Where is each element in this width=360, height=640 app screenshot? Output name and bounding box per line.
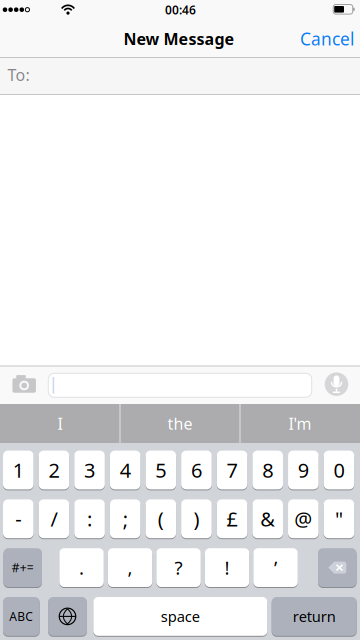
staticText: ’: [274, 555, 277, 580]
staticText: &: [260, 505, 275, 532]
button[interactable]: 7: [217, 450, 247, 490]
staticText: #+=: [12, 560, 34, 575]
staticText: £: [227, 505, 238, 532]
button[interactable]: 1: [3, 450, 34, 490]
button[interactable]: #+=: [3, 547, 42, 588]
button[interactable]: ?: [156, 547, 201, 588]
button[interactable]: 5: [145, 450, 176, 490]
staticText: .: [79, 555, 84, 580]
button[interactable]: (: [145, 498, 176, 539]
staticText: ): [193, 505, 199, 532]
staticText: Cancel: [300, 27, 354, 50]
staticText: !: [225, 555, 230, 580]
button[interactable]: [320, 366, 352, 402]
staticText: :: [87, 505, 92, 532]
staticText: I: [57, 413, 62, 434]
staticText: 6: [191, 457, 202, 483]
button[interactable]: [48, 596, 87, 637]
staticText: 5: [155, 457, 166, 483]
staticText: ;: [123, 505, 128, 532]
staticText: @: [294, 505, 312, 532]
staticText: 00:46: [165, 2, 196, 18]
button[interactable]: I: [1, 404, 119, 443]
button[interactable]: return: [272, 596, 357, 637]
button[interactable]: !: [205, 547, 249, 588]
staticText: (: [158, 505, 164, 532]
button[interactable]: .: [59, 547, 104, 588]
staticText: -: [15, 505, 21, 532]
staticText: /: [50, 505, 57, 532]
staticText: To:: [7, 64, 29, 85]
staticText: return: [293, 607, 336, 626]
button[interactable]: To:: [0, 57, 360, 94]
staticText: space: [161, 607, 200, 626]
button[interactable]: &: [252, 498, 283, 539]
button[interactable]: @: [288, 498, 319, 539]
staticText: 3: [84, 457, 95, 483]
staticText: ABC: [9, 608, 33, 624]
button[interactable]: [5, 366, 43, 404]
button[interactable]: 6: [181, 450, 212, 490]
button[interactable]: ): [181, 498, 212, 539]
button[interactable]: 4: [110, 450, 140, 490]
staticText: ?: [175, 555, 183, 580]
staticText: 8: [262, 457, 273, 483]
button[interactable]: :: [74, 498, 105, 539]
button[interactable]: 3: [74, 450, 105, 490]
staticText: the: [167, 413, 192, 434]
button[interactable]: ABC: [3, 596, 40, 637]
button[interactable]: 8: [252, 450, 283, 490]
staticText: New Message: [123, 28, 234, 49]
button[interactable]: ": [324, 498, 354, 539]
button[interactable]: I'm: [241, 404, 359, 443]
button[interactable]: 2: [39, 450, 69, 490]
button[interactable]: ,: [108, 547, 152, 588]
staticText: 7: [227, 457, 238, 483]
button[interactable]: ’: [253, 547, 298, 588]
staticText: ,: [128, 555, 133, 580]
button[interactable]: ;: [110, 498, 140, 539]
button[interactable]: Cancel: [300, 27, 354, 50]
button[interactable]: 0: [324, 450, 354, 490]
button[interactable]: 9: [288, 450, 319, 490]
staticText: ": [335, 505, 343, 532]
button[interactable]: the: [121, 404, 239, 443]
staticText: 4: [120, 457, 131, 483]
button[interactable]: [318, 547, 356, 588]
staticText: 2: [48, 457, 59, 483]
staticText: 1: [13, 457, 24, 483]
button[interactable]: /: [39, 498, 69, 539]
button[interactable]: [48, 373, 312, 397]
staticText: 9: [298, 457, 309, 483]
button[interactable]: space: [93, 596, 267, 637]
staticText: 0: [333, 457, 344, 483]
button[interactable]: -: [3, 498, 34, 539]
staticText: I'm: [288, 413, 311, 434]
button[interactable]: £: [217, 498, 247, 539]
